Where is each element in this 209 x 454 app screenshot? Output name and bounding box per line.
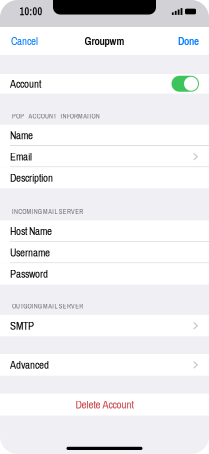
staticText: OUTGOING MAIL SERVER	[12, 302, 83, 311]
staticText: SMTP	[10, 318, 34, 333]
button[interactable]: Delete Account	[0, 394, 209, 415]
staticText: Name	[10, 128, 33, 143]
button[interactable]: Done	[172, 27, 209, 55]
staticText: 10:00	[19, 5, 42, 18]
button[interactable]: Username	[0, 242, 209, 263]
staticText: Email	[10, 149, 32, 164]
staticText: Cancel	[11, 34, 38, 48]
button[interactable]: Advanced	[0, 354, 209, 376]
staticText: Account	[10, 76, 41, 91]
staticText: INCOMING MAIL SERVER	[12, 207, 83, 216]
staticText: Advanced	[10, 357, 49, 372]
staticText: Password	[10, 266, 48, 281]
staticText: POP ACCOUNT INFORMATION	[12, 112, 100, 121]
staticText: Groupwm	[84, 34, 124, 48]
button[interactable]: Cancel	[0, 27, 44, 55]
staticText: Description	[10, 170, 53, 185]
button[interactable]: SMTP	[0, 315, 209, 337]
button[interactable]: Name	[0, 125, 209, 146]
staticText: Host Name	[10, 224, 52, 238]
button[interactable]: Host Name	[0, 220, 209, 242]
button[interactable]: Email	[0, 146, 209, 167]
button[interactable]: Account	[0, 74, 209, 93]
staticText: Username	[10, 245, 50, 260]
button[interactable]: Description	[0, 167, 209, 188]
button[interactable]: Password	[0, 263, 209, 285]
staticText: Delete Account	[75, 397, 133, 412]
staticText: Done	[178, 34, 199, 48]
